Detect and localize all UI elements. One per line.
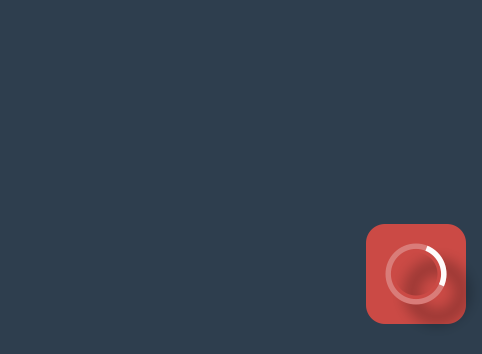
button[interactable]: Loading — [366, 224, 466, 324]
